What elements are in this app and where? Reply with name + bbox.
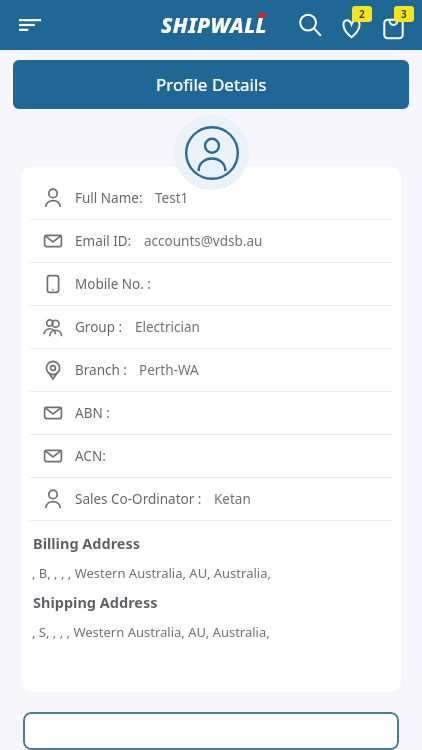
button[interactable]: Cart (372, 4, 414, 46)
staticText: Shipping Address (33, 592, 158, 612)
staticText: ABN : (75, 404, 110, 422)
button[interactable]: Group : (21, 306, 401, 348)
button[interactable]: Profile Details (13, 60, 409, 109)
button[interactable]: Mobile No. : (21, 263, 401, 305)
button[interactable]: SHIPWALL (161, 11, 268, 40)
staticText: 3 (401, 7, 407, 21)
staticText: Sales Co-Ordinator : (75, 490, 202, 508)
button[interactable]: Menu (10, 5, 50, 45)
staticText: , B, , , , Western Australia, AU, Austra… (32, 564, 271, 582)
staticText: Mobile No. : (75, 275, 151, 293)
staticText: Branch : (75, 361, 127, 379)
staticText: , S, , , , Western Australia, AU, Austra… (32, 623, 270, 641)
button[interactable]: Branch : (21, 349, 401, 391)
staticText: Full Name: (75, 189, 143, 207)
button[interactable]: Search (290, 5, 330, 45)
staticText: Electrician (135, 318, 200, 336)
staticText: 2 (359, 7, 365, 21)
button[interactable]: Profile picture (174, 115, 249, 190)
staticText: accounts@vdsb.au (144, 232, 263, 250)
button[interactable] (23, 712, 399, 750)
staticText: Ketan (214, 490, 251, 508)
button[interactable]: ACN: (21, 435, 401, 477)
staticText: ACN: (75, 447, 106, 465)
staticText: Billing Address (33, 533, 141, 553)
staticText: Group : (75, 318, 123, 336)
button[interactable]: Sales Co-Ordinator : (21, 478, 401, 520)
button[interactable]: Full Name: (21, 177, 401, 219)
staticText: Perth-WA (139, 361, 199, 379)
staticText: Test1 (155, 189, 189, 207)
staticText: SHIPWALL (161, 11, 268, 40)
button[interactable]: ABN : (21, 392, 401, 434)
staticText: Profile Details (156, 73, 267, 96)
button[interactable]: Wishlist (330, 4, 372, 46)
button[interactable]: Email ID: (21, 220, 401, 262)
staticText: Email ID: (75, 232, 132, 250)
